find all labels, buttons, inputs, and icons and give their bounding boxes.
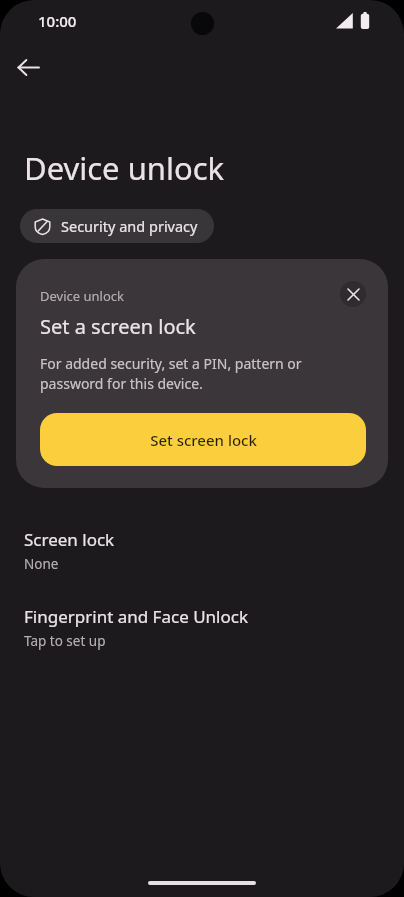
staticText: Fingerprint and Face Unlock bbox=[24, 605, 248, 628]
button[interactable]: Screen lock bbox=[0, 524, 404, 577]
staticText: Device unlock bbox=[24, 147, 225, 189]
staticText: For added security, set a PIN, pattern o… bbox=[40, 354, 366, 393]
staticText: 10:00 bbox=[38, 11, 77, 31]
staticText: Set screen lock bbox=[150, 430, 257, 450]
button[interactable]: Set screen lock bbox=[40, 413, 366, 466]
button[interactable]: Security and privacy bbox=[20, 209, 214, 243]
staticText: Screen lock bbox=[24, 528, 115, 551]
staticText: Device unlock bbox=[40, 287, 340, 305]
staticText: Set a screen lock bbox=[40, 313, 196, 340]
staticText: Security and privacy bbox=[61, 216, 198, 236]
button[interactable]: Back bbox=[6, 45, 50, 89]
button[interactable]: Dismiss bbox=[340, 281, 366, 307]
staticText: None bbox=[24, 555, 59, 573]
button[interactable]: Fingerprint and Face Unlock bbox=[0, 601, 404, 654]
staticText: Tap to set up bbox=[24, 632, 106, 650]
